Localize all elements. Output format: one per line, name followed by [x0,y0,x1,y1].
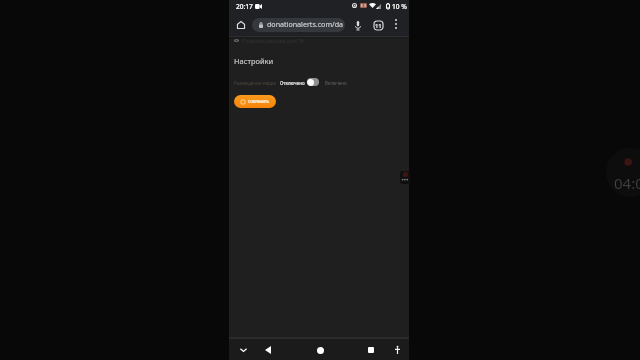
staticText: 11 [375,22,382,30]
staticText: Включено [325,80,347,86]
staticText: 10 % [392,2,407,11]
staticText: 20:17 [236,2,253,11]
button[interactable]: Home [312,342,328,358]
staticText: 04:05 [614,173,640,193]
button[interactable]: СОХРАНИТЬ [234,95,276,108]
button[interactable]: Voice search [350,17,366,33]
staticText: СОХРАНИТЬ [248,99,270,104]
staticText: Настройки [234,56,274,66]
button[interactable]: Tabs [370,17,386,33]
button[interactable]: More options [389,17,403,31]
staticText: donationalerts.com/da [267,19,343,29]
button[interactable]: Recents [363,342,379,358]
button[interactable]: Home [233,17,249,33]
button[interactable]: Accessibility [389,342,405,358]
staticText: Размещение медиа [234,80,276,86]
staticText: Отключено [280,80,305,86]
button[interactable]: Back [260,342,276,358]
button[interactable]: Toggle recording mode [307,78,319,86]
button[interactable]: Screen recorder [400,171,410,184]
button[interactable]: Hide keyboard [235,342,251,358]
button[interactable]: donationalerts.com/da [252,18,345,32]
staticText: Показать версию для ПК [243,38,305,45]
